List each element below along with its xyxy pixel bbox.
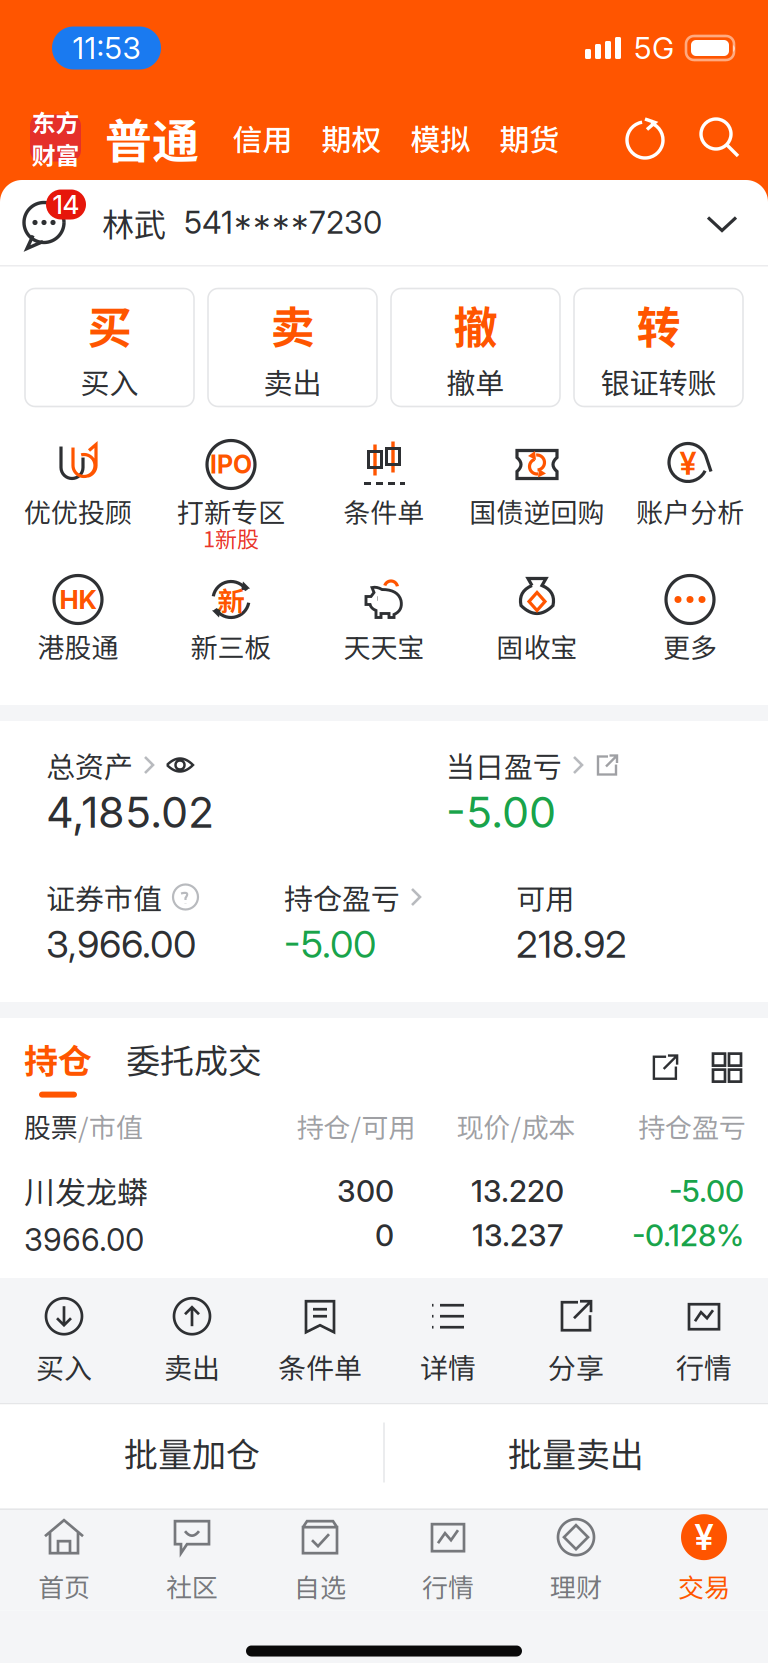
staticText: 卖出: [164, 1346, 220, 1387]
staticText: IPO: [210, 449, 252, 480]
staticText: 林武: [102, 199, 166, 246]
staticText: 卖出: [263, 360, 321, 402]
button[interactable]: 批量加仓: [0, 1404, 384, 1500]
staticText: 买入: [80, 360, 138, 402]
button[interactable]: 卖出: [128, 1278, 256, 1403]
button[interactable]: 详情: [384, 1278, 512, 1403]
staticText: 541****7230: [184, 204, 382, 241]
button[interactable]: 设置列: [682, 1050, 768, 1098]
staticText: 新: [217, 580, 244, 619]
button[interactable]: 国债逆回购: [460, 438, 613, 573]
button[interactable]: 分享: [512, 1278, 640, 1403]
button[interactable]: HK: [1, 573, 154, 708]
staticText: -0.128%: [632, 1217, 744, 1253]
staticText: 固收宝: [496, 626, 577, 666]
staticText: 天天宝: [343, 626, 424, 666]
button[interactable]: 买: [25, 288, 194, 406]
button[interactable]: IPO: [154, 438, 307, 573]
staticText: 买: [87, 293, 131, 356]
staticText: 300: [337, 1173, 394, 1209]
staticText: 总资产: [46, 744, 133, 786]
staticText: 持仓盈亏: [638, 1106, 746, 1146]
staticText: 首页: [38, 1567, 90, 1605]
staticText: 持仓: [24, 1034, 92, 1084]
button[interactable]: 新: [154, 573, 307, 708]
button[interactable]: 卖: [208, 288, 377, 406]
staticText: 模拟: [410, 116, 470, 160]
staticText: -5.00: [284, 921, 376, 967]
staticText: 证券市值: [46, 876, 162, 918]
button[interactable]: ¥: [640, 1509, 768, 1611]
staticText: 委托成交: [126, 1034, 262, 1084]
staticText: 港股通: [37, 626, 118, 666]
staticText: 218.92: [516, 921, 627, 967]
staticText: ¥: [679, 445, 696, 482]
staticText: 银证转账: [600, 360, 716, 402]
button[interactable]: 条件单: [256, 1278, 384, 1403]
button[interactable]: 优优投顾: [1, 438, 154, 573]
staticText: 当日盈亏: [446, 744, 562, 786]
staticText: 期货: [499, 116, 559, 160]
staticText: -5.00: [446, 786, 556, 838]
button[interactable]: 持仓: [0, 1034, 92, 1098]
button[interactable]: 理财: [512, 1509, 640, 1611]
staticText: 5G: [634, 30, 674, 66]
staticText: 11:53: [72, 30, 140, 66]
staticText: 详情: [420, 1346, 476, 1387]
button[interactable]: 模拟: [396, 116, 485, 160]
button[interactable]: 批量卖出: [384, 1404, 768, 1500]
button[interactable]: 天天宝: [307, 573, 460, 708]
button[interactable]: 条件单: [307, 438, 460, 573]
staticText: /市值: [78, 1106, 143, 1146]
button[interactable]: 自选: [256, 1509, 384, 1611]
button[interactable]: 更多: [613, 573, 766, 708]
staticText: 3966.00: [24, 1221, 144, 1258]
staticText: 优优投顾: [24, 491, 132, 531]
staticText: 自选: [294, 1567, 346, 1605]
staticText: 3,966.00: [46, 921, 196, 967]
staticText: 撤单: [446, 360, 504, 402]
button[interactable]: 14: [0, 180, 768, 265]
staticText: 批量卖出: [508, 1428, 644, 1477]
staticText: 转: [636, 293, 680, 356]
button[interactable]: 搜索: [678, 115, 768, 161]
staticText: 14: [52, 189, 79, 220]
staticText: 持仓/可用: [296, 1106, 415, 1146]
button[interactable]: 首页: [0, 1509, 128, 1611]
staticText: 撤: [453, 293, 497, 356]
staticText: 更多: [663, 626, 717, 666]
button[interactable]: 买入: [0, 1278, 128, 1403]
button[interactable]: 行情: [640, 1278, 768, 1403]
button[interactable]: 撤: [391, 288, 560, 406]
staticText: 普通: [105, 104, 199, 172]
staticText: 现价/成本: [456, 1106, 575, 1146]
staticText: 财富: [31, 137, 79, 172]
staticText: 期权: [321, 116, 381, 160]
button[interactable]: 期权: [307, 116, 396, 160]
button[interactable]: 刷新: [616, 115, 678, 161]
staticText: ¥: [694, 1516, 713, 1558]
button[interactable]: 信用: [218, 116, 307, 160]
staticText: 川发龙蟒: [24, 1168, 148, 1213]
button[interactable]: 社区: [128, 1509, 256, 1611]
staticText: 0: [375, 1217, 394, 1253]
button[interactable]: 转: [574, 288, 743, 406]
button[interactable]: ¥: [613, 438, 766, 573]
button[interactable]: 全屏: [649, 1051, 682, 1098]
staticText: 打新专区: [177, 491, 285, 531]
staticText: 社区: [166, 1567, 218, 1605]
button[interactable]: 委托成交: [92, 1034, 262, 1098]
button[interactable]: 行情: [384, 1509, 512, 1611]
button[interactable]: 固收宝: [460, 573, 613, 708]
staticText: 批量加仓: [124, 1428, 260, 1477]
staticText: 条件单: [343, 491, 424, 531]
staticText: 理财: [550, 1567, 602, 1605]
staticText: 持仓盈亏: [284, 876, 400, 918]
staticText: 行情: [676, 1346, 732, 1387]
button[interactable]: 期货: [485, 116, 574, 160]
staticText: 信用: [232, 116, 292, 160]
button[interactable]: 普通: [81, 104, 218, 172]
staticText: 股票: [24, 1106, 78, 1146]
staticText: 分享: [548, 1346, 604, 1387]
staticText: 账户分析: [636, 491, 744, 531]
